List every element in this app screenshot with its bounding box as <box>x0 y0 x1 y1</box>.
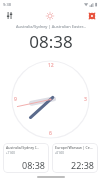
staticText: Europe/Warsaw | Ce… <box>55 145 93 150</box>
button[interactable]: Brightness <box>44 10 56 22</box>
staticText: 3 <box>84 96 87 103</box>
button[interactable]: Australia/Sydney I… <box>3 143 49 173</box>
staticText: +11:00 <box>6 151 15 155</box>
staticText: Australia/Sydney I… <box>6 145 40 150</box>
staticText: 08:38 <box>29 30 73 53</box>
staticText: Australia/Sydney | Australian Easter… <box>16 24 86 29</box>
staticText: 9 <box>14 96 17 103</box>
staticText: +01:00 <box>55 151 64 155</box>
button[interactable]: Europe/Warsaw | Ce… <box>52 143 98 173</box>
button[interactable]: Settings <box>4 10 15 21</box>
button[interactable]: Add alarm <box>86 10 97 21</box>
staticText: 12 <box>48 62 54 69</box>
staticText: 6 <box>49 130 52 137</box>
staticText: 08:38 <box>22 159 46 171</box>
staticText: 22:38 <box>71 159 95 171</box>
staticText: 9:38 <box>3 2 11 7</box>
